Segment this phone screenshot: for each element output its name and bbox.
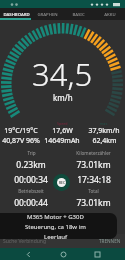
staticText: 00:00:34 [14, 174, 48, 183]
button[interactable]: Home [56, 248, 70, 260]
button[interactable]: BASIC [63, 8, 94, 20]
button[interactable]: 0,23km [0, 159, 62, 168]
staticText: Suche Verbindung [3, 238, 47, 245]
staticText: Steuerung, ca 18w im [25, 223, 86, 231]
button[interactable]: 17:34:18 [62, 174, 125, 183]
button[interactable]: 40,87V 96% [0, 136, 41, 144]
staticText: REC [59, 181, 65, 185]
staticText: Kilometerzähler [76, 150, 111, 156]
staticText: Speed [57, 121, 68, 126]
button[interactable]: 73,01km [62, 159, 125, 168]
staticText: max [100, 121, 108, 126]
staticText: 34,5 [32, 53, 93, 95]
staticText: km/h [53, 92, 73, 103]
staticText: AKKU [104, 11, 116, 17]
staticText: BASIC [72, 11, 85, 17]
button[interactable]: 00:00:34 [0, 174, 62, 183]
button[interactable]: 17,6W [41, 126, 83, 134]
staticText: M365 Motor + G30D [27, 213, 84, 221]
staticText: 37,9km/h [88, 126, 120, 134]
button[interactable]: Back [21, 248, 35, 260]
staticText: 40,87V 96% [2, 136, 40, 144]
staticText: 73,01km [76, 159, 111, 168]
staticText: GRAPHEN [37, 11, 58, 17]
button[interactable]: 14649mAh [41, 136, 83, 144]
staticText: 14649mAh [44, 136, 80, 144]
button[interactable]: 19°C/19°C [0, 126, 41, 134]
staticText: Trip [27, 150, 36, 156]
button[interactable]: 62,4km [83, 136, 125, 144]
button[interactable]: Recents [90, 248, 104, 260]
staticText: Total [88, 188, 99, 194]
staticText: 17,6W [52, 126, 73, 134]
staticText: 0,23km [16, 159, 46, 168]
button[interactable]: 37,9km/h [83, 126, 125, 134]
staticText: 19°C/19°C [4, 126, 38, 134]
staticText: TRENNEN [99, 238, 121, 244]
staticText: 00:00:44 [14, 197, 48, 206]
button[interactable]: TRENNEN [99, 238, 121, 244]
button[interactable]: Record [53, 174, 70, 191]
button[interactable]: DASHBOARD [0, 8, 32, 20]
staticText: 73,01km [76, 197, 111, 206]
button[interactable]: 73,01km [62, 197, 125, 206]
staticText: 17:34:18 [77, 174, 111, 183]
staticText: 62,4km [92, 136, 117, 144]
button[interactable]: 00:00:44 [0, 197, 62, 206]
staticText: DASHBOARD [3, 11, 30, 17]
button[interactable]: AKKU [94, 8, 125, 20]
button[interactable]: GRAPHEN [32, 8, 63, 20]
staticText: Leerlauf [44, 233, 68, 239]
staticText: Betriebszeit [18, 188, 44, 194]
